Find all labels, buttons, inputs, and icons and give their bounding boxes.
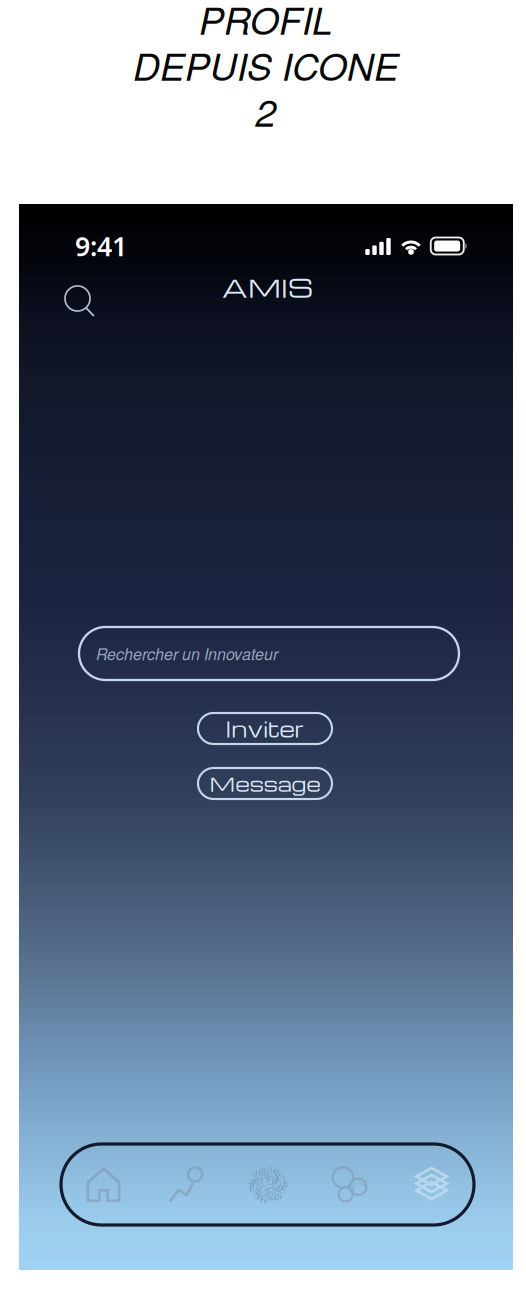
staticText: Rechercher un Innovateur	[96, 642, 278, 665]
staticText: PROFIL	[199, 0, 333, 45]
staticText: AMIS	[222, 270, 313, 304]
staticText: Message	[209, 770, 320, 797]
button[interactable]: Tendances	[144, 1146, 226, 1223]
button[interactable]: Inviter	[198, 713, 332, 744]
button[interactable]: Réseau	[308, 1146, 390, 1223]
staticText: DEPUIS ICONE	[133, 39, 399, 91]
button[interactable]: Rechercher	[57, 278, 102, 324]
button[interactable]: Collections	[390, 1146, 472, 1223]
button[interactable]: Message	[198, 768, 332, 799]
staticText: 2	[255, 85, 276, 137]
button[interactable]: Accueil	[62, 1146, 144, 1223]
button[interactable]: Rechercher un Innovateur	[79, 627, 459, 680]
button[interactable]: Idées	[226, 1146, 308, 1223]
staticText: 9:41	[75, 228, 127, 264]
staticText: Inviter	[225, 714, 304, 743]
